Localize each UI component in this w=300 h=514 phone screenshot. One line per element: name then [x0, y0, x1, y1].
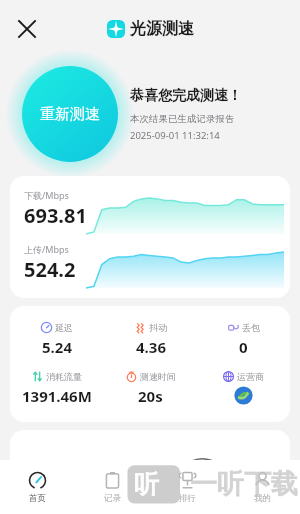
button[interactable]: 首页	[0, 460, 75, 514]
staticText: 记录	[104, 493, 121, 504]
staticText: 0	[239, 337, 248, 357]
staticText: 20s	[138, 386, 163, 406]
button[interactable]: 抖动	[104, 322, 197, 357]
button[interactable]: 排行	[150, 460, 225, 514]
button[interactable]: 下载/Mbps	[10, 176, 290, 298]
staticText: 运营商	[237, 371, 264, 382]
button[interactable]: 测速时间	[104, 371, 197, 406]
staticText: 重新测速	[40, 105, 100, 124]
staticText: 排行	[179, 493, 196, 504]
staticText: 延迟	[55, 322, 73, 333]
staticText: 抖动	[149, 322, 167, 333]
button[interactable]: 丢包	[197, 322, 290, 357]
staticText: 恭喜您完成测速！	[130, 87, 242, 105]
staticText: 光源测速	[130, 19, 194, 39]
button[interactable]: 消耗流量	[10, 371, 104, 406]
other: China Mobile	[234, 386, 253, 405]
staticText: 消耗流量	[46, 371, 82, 382]
button[interactable]: 延迟	[10, 322, 104, 357]
staticText: 5.24	[42, 337, 72, 357]
staticText: 上传/Mbps	[24, 243, 69, 255]
staticText: 1391.46M	[22, 386, 92, 406]
staticText: 下载/Mbps	[24, 189, 69, 201]
staticText: 首页	[29, 493, 46, 504]
button[interactable]: 延迟	[10, 306, 290, 422]
staticText: 693.81	[24, 202, 87, 229]
button[interactable]	[10, 430, 290, 492]
staticText: 听	[134, 469, 159, 500]
staticText: 测速时间	[140, 371, 176, 382]
button[interactable]: 我的	[225, 460, 300, 514]
button[interactable]: 重新测速	[22, 66, 118, 162]
staticText: 4.36	[136, 337, 166, 357]
button[interactable]: Close	[6, 8, 48, 50]
staticText: 丢包	[242, 322, 260, 333]
staticText: 我的	[254, 493, 271, 504]
staticText: 2025-09-01 11:32:14	[130, 129, 220, 142]
staticText: 一听下载	[190, 467, 298, 501]
button[interactable]: 记录	[75, 460, 150, 514]
staticText: 本次结果已生成记录报告	[130, 113, 235, 125]
staticText: 524.2	[24, 256, 76, 283]
button[interactable]: 运营商	[197, 371, 290, 405]
